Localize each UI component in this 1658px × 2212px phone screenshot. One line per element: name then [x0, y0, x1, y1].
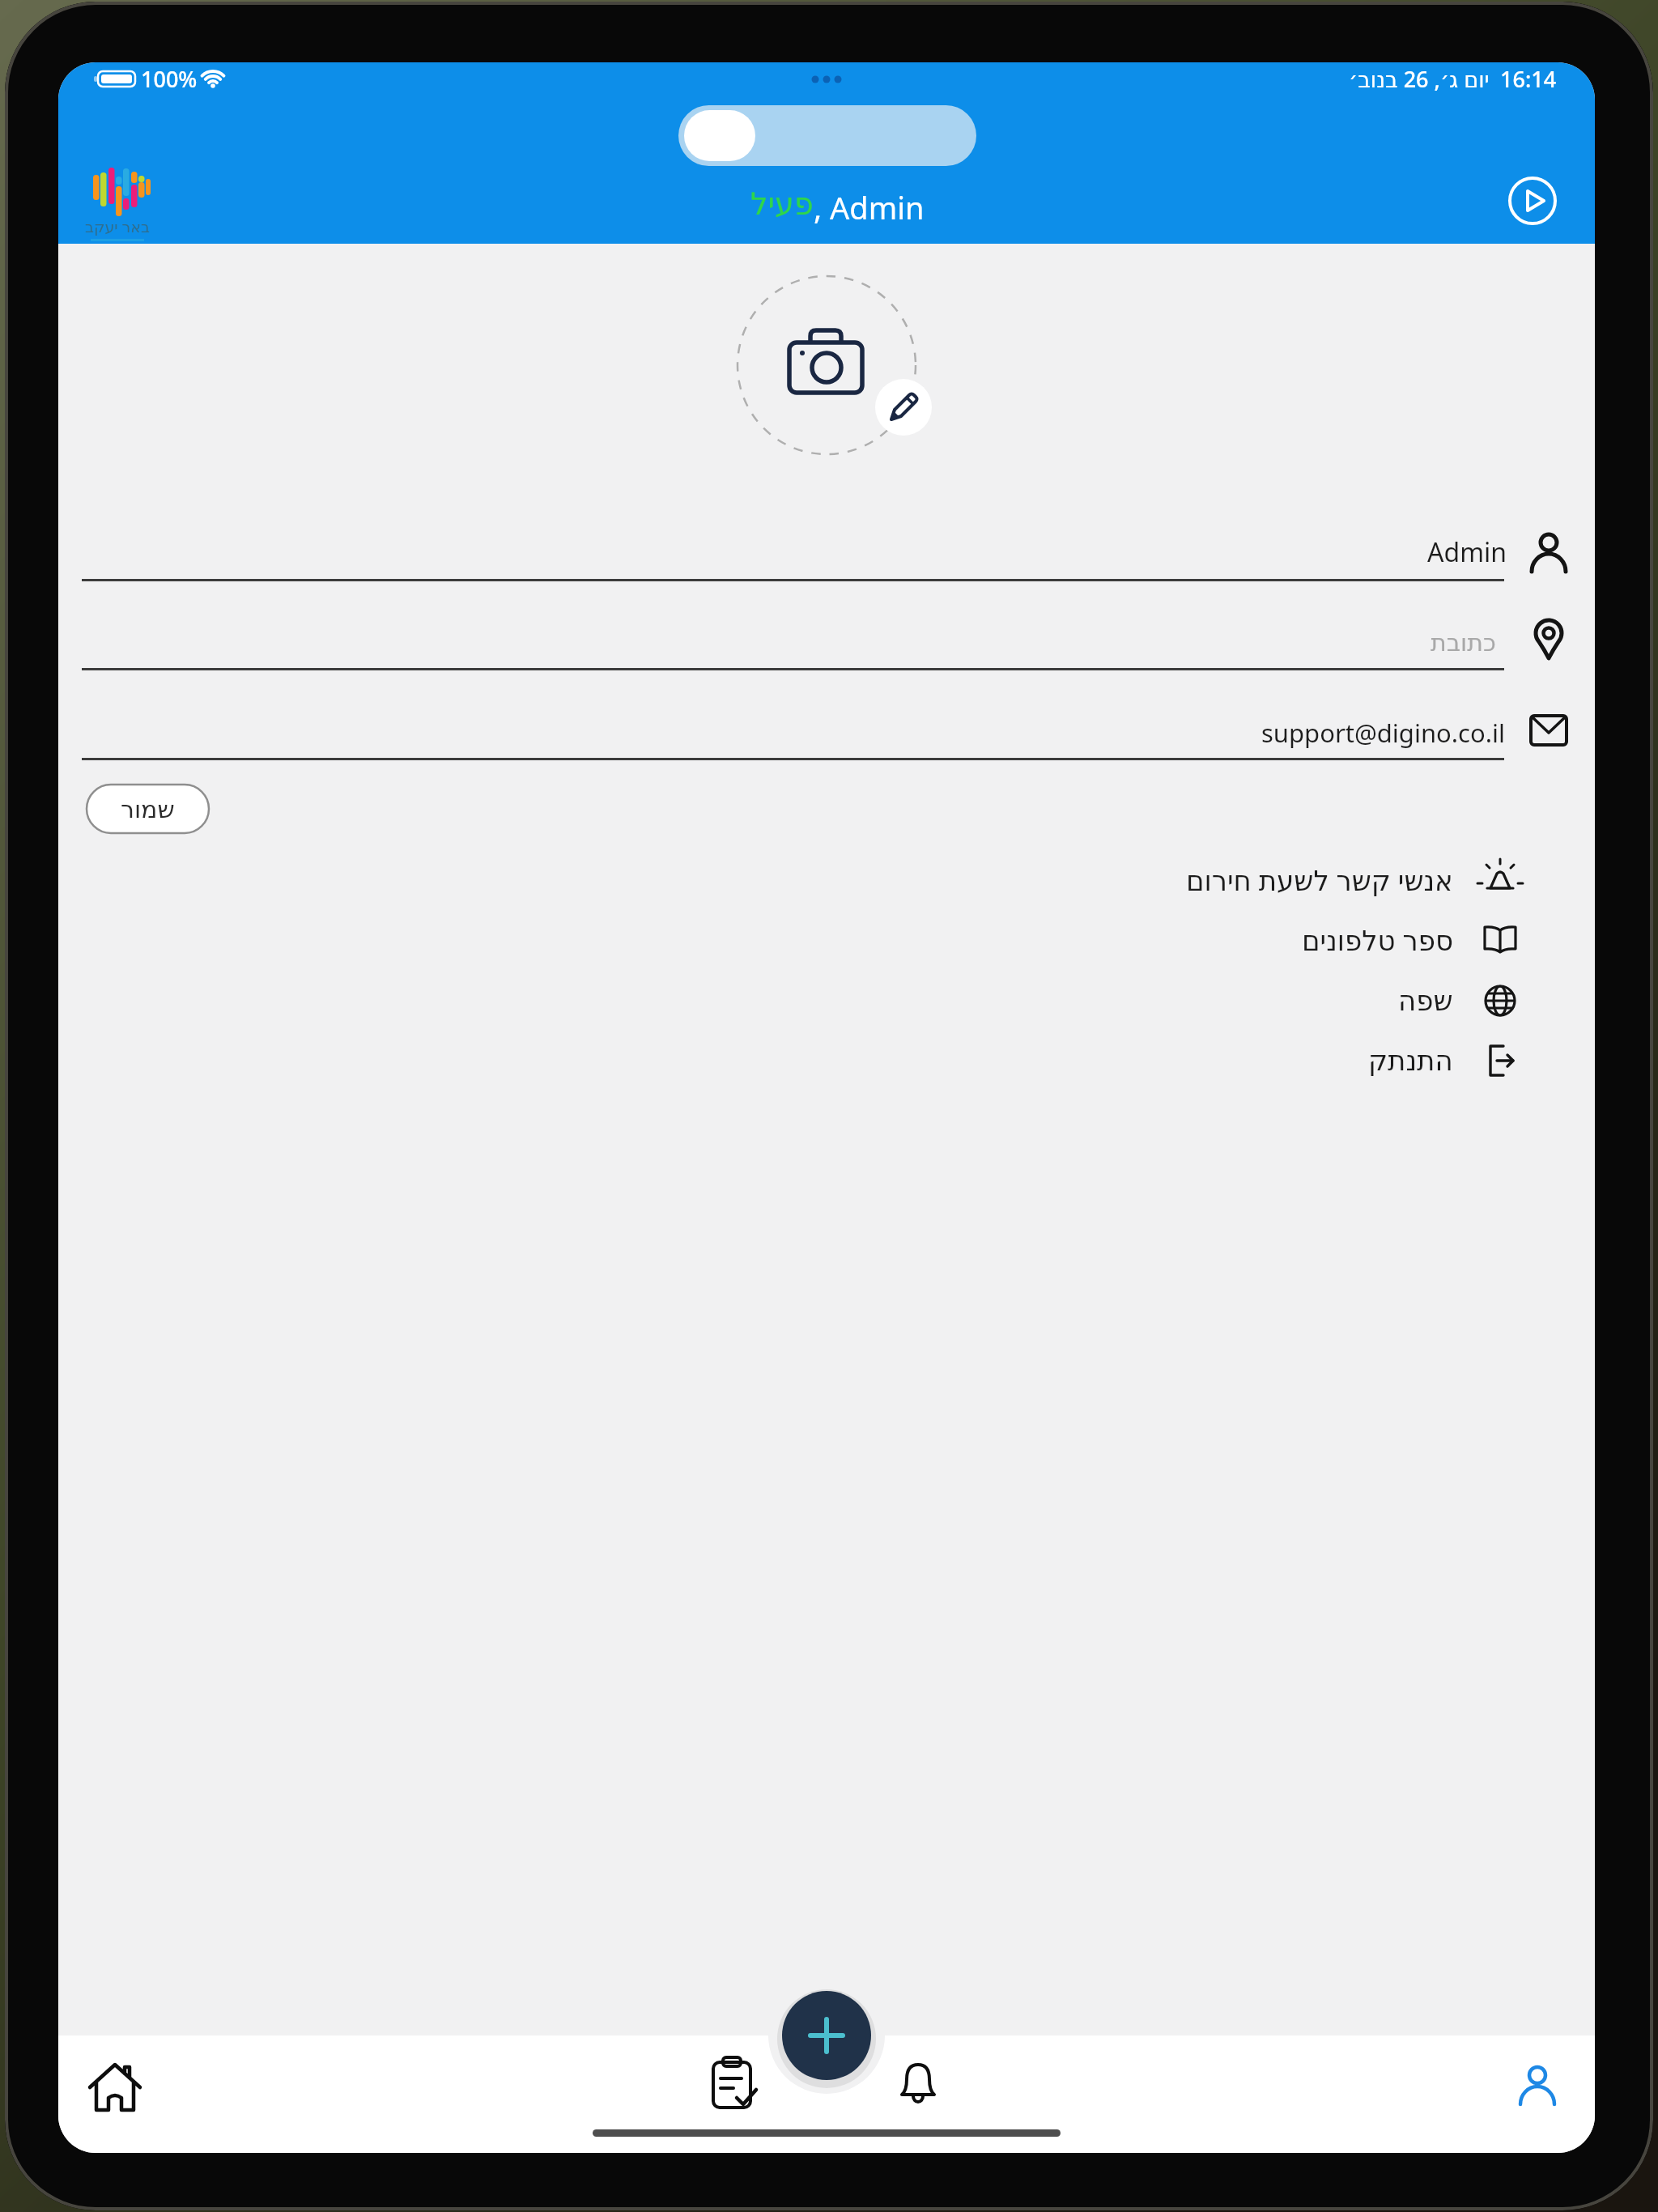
staticText: באר יעקב — [85, 216, 150, 237]
staticText: שפה — [1398, 985, 1453, 1017]
staticText: פעיל — [750, 186, 814, 222]
staticText: support@digino.co.il — [1261, 716, 1506, 750]
button[interactable] — [1508, 177, 1557, 225]
staticText: , Admin — [814, 186, 925, 228]
staticText: אנשי קשר לשעת חירום — [1186, 861, 1453, 899]
staticText: כתובת — [1431, 628, 1496, 657]
staticText: יום ג׳, 26 בנוב׳ — [1349, 64, 1490, 94]
staticText: ספר טלפונים — [1302, 921, 1453, 959]
button[interactable]: שמור — [86, 784, 210, 834]
button[interactable] — [706, 2056, 764, 2114]
staticText: 16:14 — [1500, 64, 1557, 94]
button[interactable] — [892, 2057, 944, 2108]
button[interactable]: אנשי קשר לשעת חירום — [725, 850, 1542, 910]
button[interactable] — [678, 105, 976, 166]
staticText: Admin — [1427, 534, 1507, 570]
button[interactable] — [713, 252, 940, 479]
button[interactable]: שפה — [725, 971, 1542, 1031]
button[interactable]: התנתק — [725, 1031, 1542, 1091]
button[interactable] — [774, 1983, 879, 2088]
button[interactable]: ספר טלפונים — [725, 910, 1542, 970]
staticText: 100% — [141, 64, 198, 94]
button[interactable] — [1512, 2060, 1562, 2112]
button[interactable] — [83, 2054, 147, 2119]
button[interactable] — [875, 379, 932, 436]
staticText: שמור — [121, 795, 175, 823]
staticText: התנתק — [1368, 1044, 1453, 1077]
